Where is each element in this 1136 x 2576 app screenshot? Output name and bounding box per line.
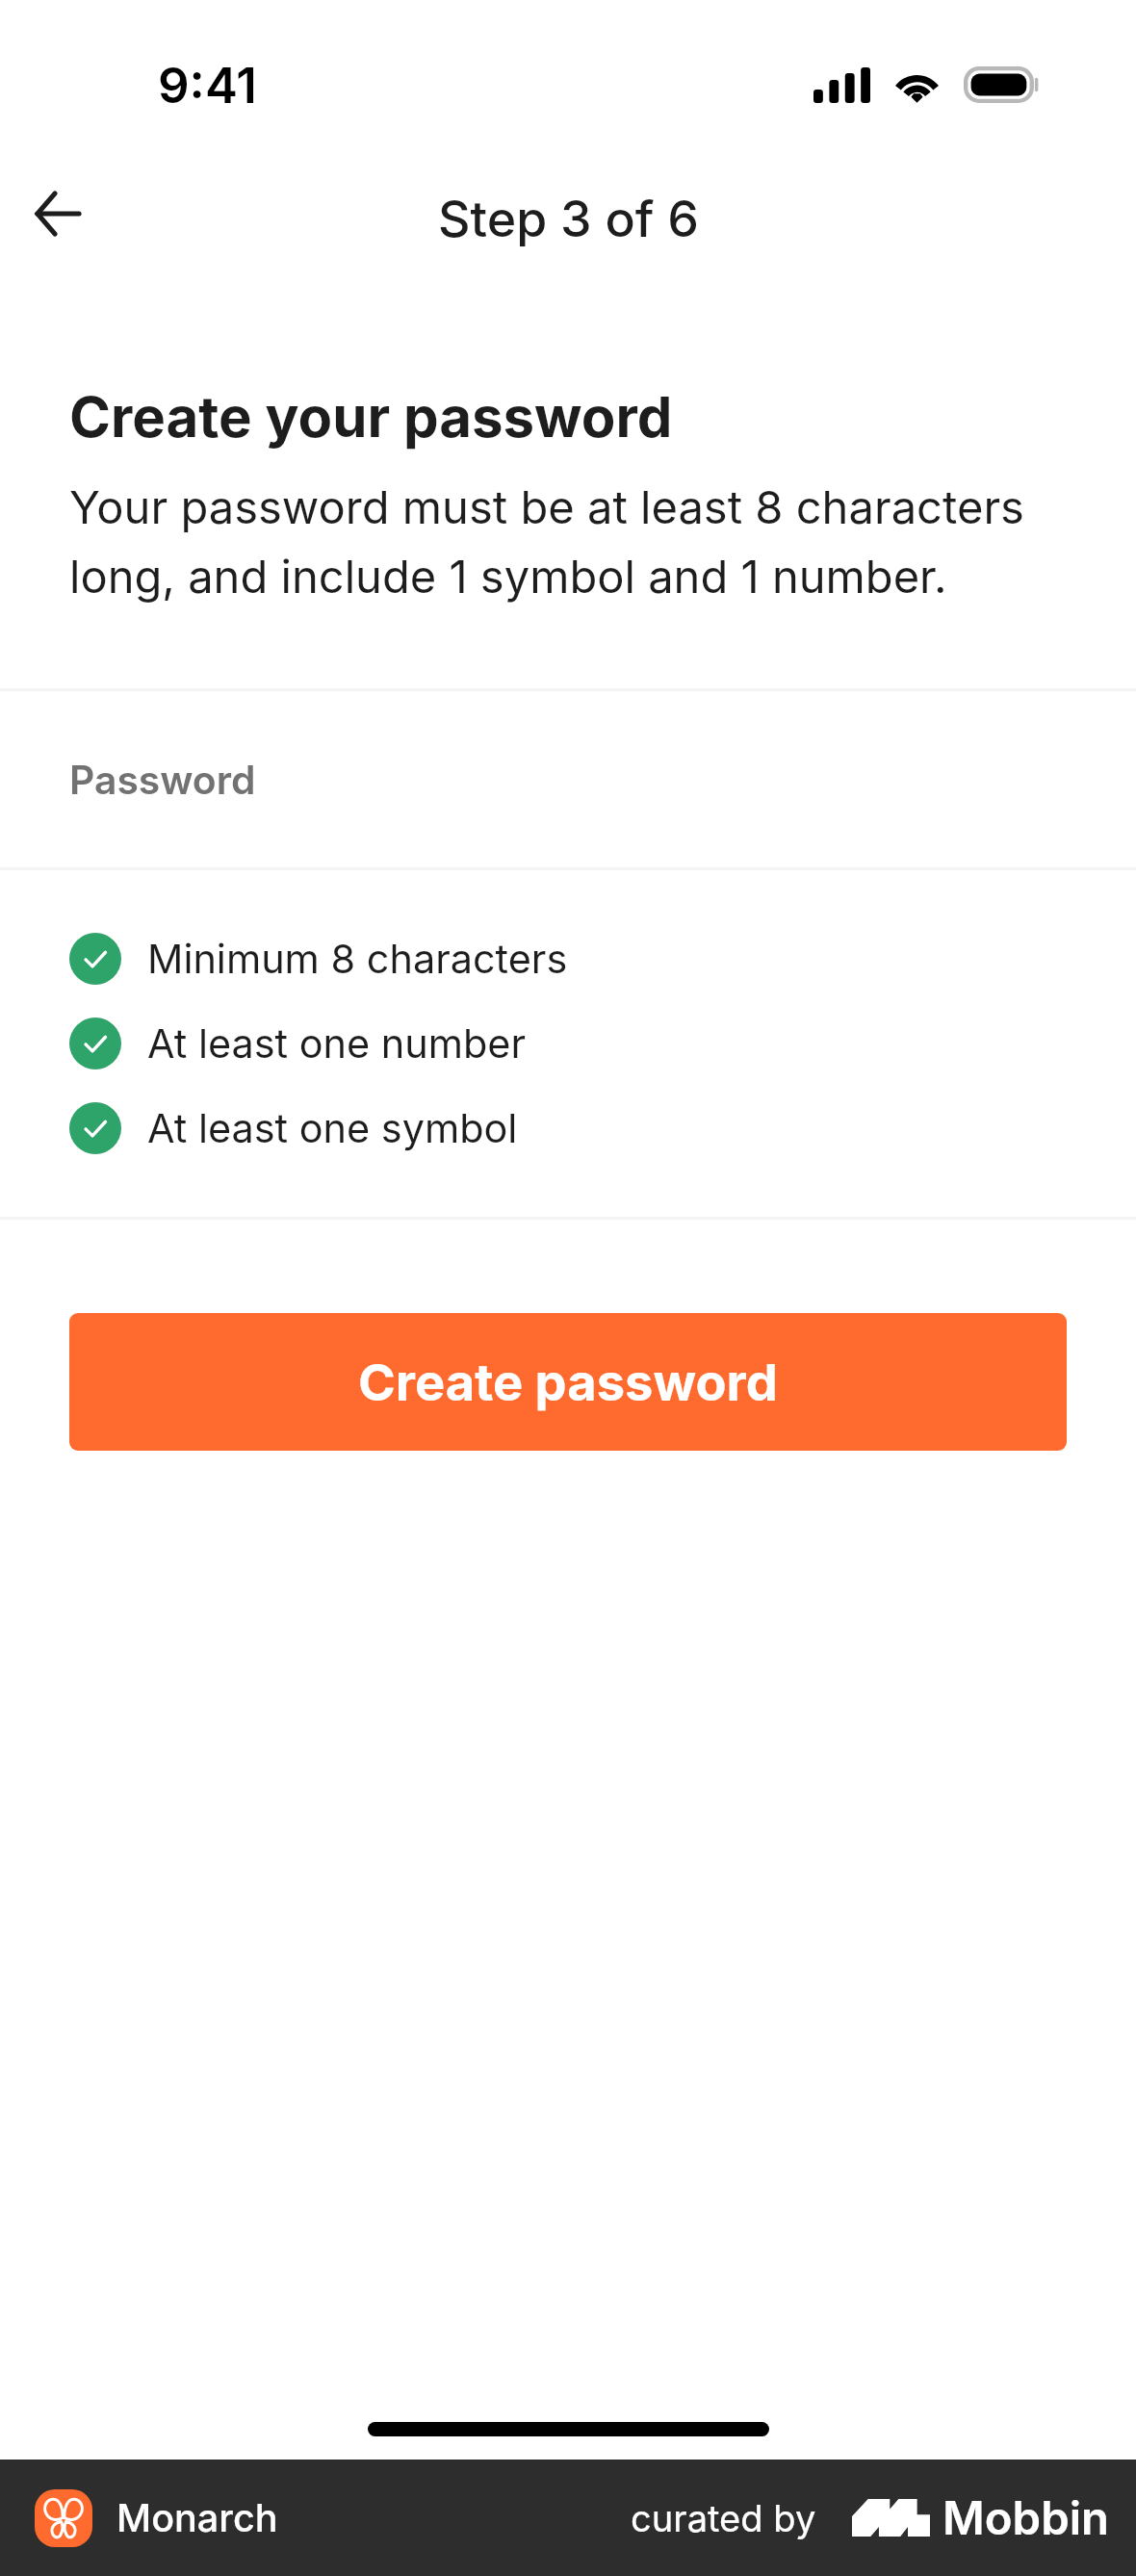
staticText: curated by (631, 2496, 816, 2540)
button[interactable]: Back (0, 144, 127, 283)
staticText: 9:41 (158, 56, 257, 116)
staticText: Create your password (69, 383, 673, 451)
staticText: At least one symbol (147, 1104, 518, 1152)
staticText: Step 3 of 6 (438, 189, 699, 249)
staticText: Monarch (116, 2495, 278, 2541)
button[interactable]: Password (0, 691, 1136, 867)
staticText: Create password (358, 1352, 778, 1413)
staticText: Mobbin (942, 2490, 1110, 2545)
staticText: Password (69, 756, 256, 803)
staticText: Minimum 8 characters (147, 935, 568, 983)
button[interactable]: Create password (69, 1313, 1067, 1451)
staticText: Your password must be at least 8 charact… (69, 479, 1067, 604)
staticText: At least one number (147, 1019, 527, 1068)
